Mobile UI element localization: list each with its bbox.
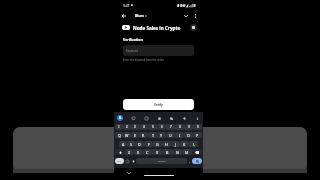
- staticText: 5: [152, 125, 154, 129]
- button[interactable]: A: [119, 141, 127, 147]
- staticText: Y: [160, 133, 163, 138]
- button[interactable]: ?123: [115, 158, 124, 164]
- button[interactable]: Z: [125, 149, 134, 155]
- staticText: T: [152, 133, 154, 138]
- button[interactable]: S: [127, 141, 135, 147]
- button[interactable]: K: [180, 141, 189, 147]
- button[interactable]: D: [135, 141, 144, 147]
- button[interactable]: 4: [139, 124, 148, 130]
- button[interactable]: H: [162, 141, 171, 147]
- button[interactable]: J: [171, 141, 180, 147]
- staticText: 0: [197, 125, 199, 129]
- button[interactable]: 6: [157, 124, 166, 130]
- staticText: V: [156, 150, 159, 155]
- staticText: 4: [143, 125, 145, 129]
- staticText: I: [179, 133, 181, 138]
- button[interactable]: Back: [120, 12, 128, 20]
- button[interactable]: Keyword: [123, 45, 194, 56]
- staticText: O: [187, 133, 190, 138]
- staticText: ?123: [117, 160, 122, 163]
- staticText: Enter the keyword from the video: [123, 58, 164, 62]
- staticText: M: [185, 150, 189, 155]
- staticText: Node Sales in Crypto: [133, 25, 181, 31]
- staticText: Q: [118, 133, 121, 138]
- button[interactable]: 2: [123, 124, 131, 130]
- button[interactable]: Clipboard: [156, 115, 162, 121]
- staticText: D: [138, 142, 141, 147]
- staticText: S: [130, 142, 132, 147]
- button[interactable]: Y: [157, 132, 166, 138]
- button[interactable]: English: [136, 158, 187, 164]
- button[interactable]: W: [123, 132, 131, 138]
- button[interactable]: Verify: [123, 99, 194, 110]
- staticText: J: [175, 142, 176, 147]
- staticText: R: [142, 133, 145, 138]
- staticText: 3: [134, 125, 136, 129]
- button[interactable]: L: [189, 141, 198, 147]
- button[interactable]: 7: [166, 124, 175, 130]
- button[interactable]: Hide keyboard: [125, 169, 132, 176]
- button[interactable]: Google: [117, 115, 123, 121]
- button[interactable]: Q: [115, 132, 123, 138]
- staticText: .: [189, 159, 190, 164]
- staticText: U: [169, 133, 172, 138]
- staticText: Z: [128, 150, 131, 155]
- staticText: G: [119, 116, 122, 120]
- button[interactable]: B: [162, 149, 172, 155]
- staticText: 8: [179, 125, 181, 129]
- button[interactable]: 8: [175, 124, 184, 130]
- button[interactable]: Stickers: [143, 115, 149, 121]
- staticText: G: [156, 142, 159, 147]
- button[interactable]: Search: [192, 158, 202, 164]
- staticText: A: [122, 142, 125, 147]
- button[interactable]: P: [193, 132, 202, 138]
- button[interactable]: Information: [190, 24, 197, 31]
- button[interactable]: Backspace: [192, 149, 202, 155]
- staticText: 1: [118, 125, 120, 129]
- staticText: W: [125, 133, 129, 138]
- button[interactable]: U: [166, 132, 175, 138]
- button[interactable]: Period: [187, 158, 192, 164]
- staticText: X: [137, 150, 140, 155]
- button[interactable]: X: [134, 149, 143, 155]
- button[interactable]: Settings: [194, 115, 200, 121]
- button[interactable]: I: [175, 132, 184, 138]
- button[interactable]: Voice input: [130, 158, 136, 164]
- button[interactable]: C: [143, 149, 152, 155]
- button[interactable]: 0: [193, 124, 202, 130]
- button[interactable]: N: [172, 149, 182, 155]
- button[interactable]: E: [131, 132, 139, 138]
- button[interactable]: Theme: [181, 115, 187, 121]
- button[interactable]: 1: [115, 124, 123, 130]
- staticText: N: [176, 150, 179, 155]
- button[interactable]: Emoji: [124, 158, 130, 164]
- staticText: C: [146, 150, 149, 155]
- button[interactable]: GIF: [130, 115, 136, 121]
- button[interactable]: Expand: [182, 12, 190, 20]
- staticText: B: [166, 150, 169, 155]
- staticText: 7: [170, 125, 172, 129]
- staticText: P: [196, 133, 199, 138]
- staticText: Blum: [135, 13, 144, 18]
- button[interactable]: T: [148, 132, 157, 138]
- button[interactable]: V: [152, 149, 162, 155]
- staticText: H: [165, 142, 168, 147]
- button[interactable]: R: [139, 132, 148, 138]
- button[interactable]: 9: [184, 124, 193, 130]
- button[interactable]: M: [182, 149, 192, 155]
- button[interactable]: F: [144, 141, 153, 147]
- staticText: English: [158, 160, 166, 163]
- button[interactable]: More options: [191, 12, 199, 20]
- button[interactable]: 3: [131, 124, 139, 130]
- button[interactable]: Translate: [168, 115, 174, 121]
- staticText: Verification: [123, 37, 143, 42]
- button[interactable]: G: [153, 141, 162, 147]
- staticText: Keyword: [126, 49, 138, 53]
- staticText: E: [134, 133, 136, 138]
- button[interactable]: 5: [148, 124, 157, 130]
- staticText: 9:41: [123, 3, 130, 8]
- button[interactable]: Shift: [115, 149, 125, 155]
- button[interactable]: O: [184, 132, 193, 138]
- staticText: K: [183, 142, 186, 147]
- staticText: Verify: [154, 103, 163, 107]
